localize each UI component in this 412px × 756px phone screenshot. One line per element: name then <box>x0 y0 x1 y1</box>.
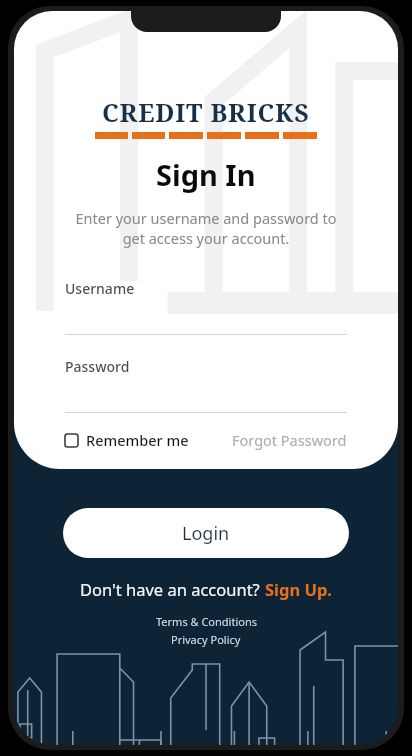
staticText: Password <box>65 357 130 376</box>
button[interactable]: Forgot Password <box>232 430 347 450</box>
button[interactable]: Remember me <box>65 430 189 450</box>
staticText: Terms & Conditions <box>156 614 257 629</box>
staticText: Sign Up. <box>265 578 333 600</box>
button[interactable]: Login <box>63 508 349 558</box>
staticText: Don't have an account? <box>80 578 265 600</box>
button[interactable]: Terms & Conditions <box>156 614 257 629</box>
staticText: Sign In <box>156 155 256 194</box>
staticText: Enter your username and password to get … <box>75 208 337 249</box>
staticText: Privacy Policy <box>171 632 241 647</box>
staticText: CREDIT BRICKS <box>102 95 310 129</box>
staticText: Login <box>182 521 230 546</box>
staticText: Forgot Password <box>232 430 347 450</box>
staticText: Username <box>65 279 135 298</box>
staticText: Remember me <box>86 430 189 450</box>
button[interactable]: Privacy Policy <box>171 632 241 647</box>
button[interactable] <box>65 298 347 334</box>
button[interactable]: Don't have an account? <box>80 578 333 600</box>
